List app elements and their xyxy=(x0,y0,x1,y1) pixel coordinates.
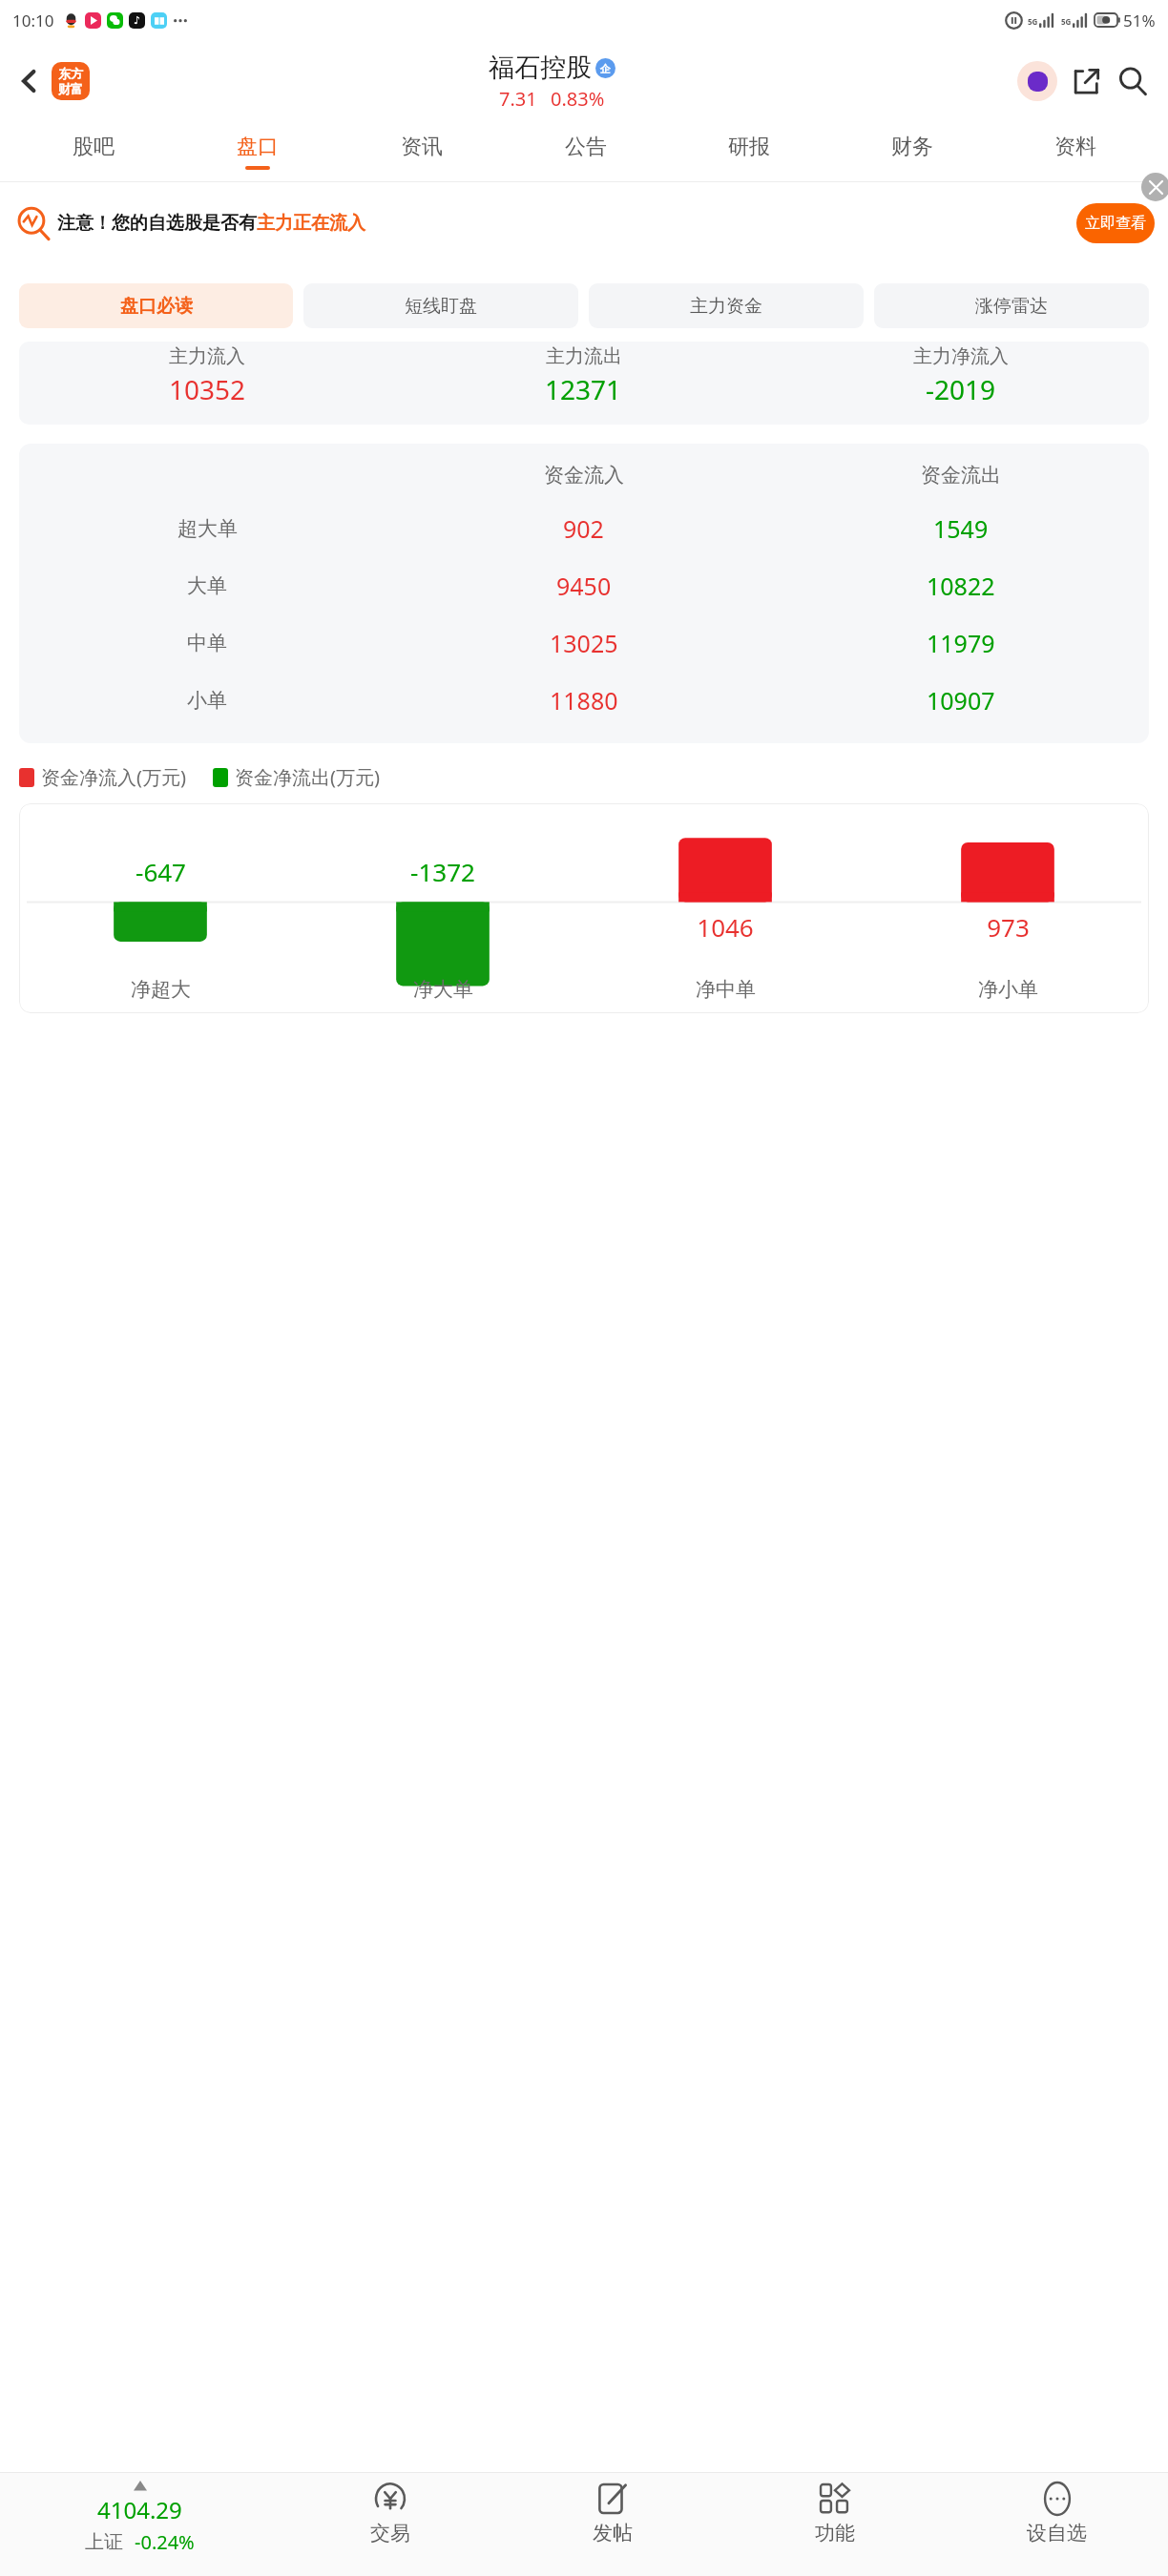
staticText: 7.31 xyxy=(499,86,537,112)
staticText: 注意！您的自选股是否有 xyxy=(57,212,257,235)
staticText: 10907 xyxy=(927,684,995,717)
staticText: 盘口必读 xyxy=(120,295,193,318)
button[interactable]: 研报 xyxy=(667,122,830,181)
staticText: 资料 xyxy=(1054,134,1096,160)
staticText: 净大单 xyxy=(413,977,473,1002)
staticText: 主力净流入 xyxy=(913,344,1009,365)
button[interactable]: 发帖 xyxy=(501,2473,723,2576)
staticText: 上证 xyxy=(85,2530,123,2554)
staticText: 盘口 xyxy=(237,134,279,160)
staticText: 净小单 xyxy=(978,977,1038,1002)
button[interactable]: 财务 xyxy=(830,122,993,181)
button[interactable]: 福石控股 xyxy=(489,52,615,112)
staticText: 股吧 xyxy=(73,134,115,160)
staticText: 短线盯盘 xyxy=(405,295,477,318)
button[interactable]: 短线盯盘 xyxy=(303,283,578,328)
staticText: 1046 xyxy=(697,910,754,944)
staticText: 资金净流入(万元) xyxy=(41,764,186,790)
staticText: 设自选 xyxy=(1027,2521,1087,2545)
staticText: 10352 xyxy=(169,371,246,407)
staticText: 企 xyxy=(600,62,611,75)
button[interactable]: 主力资金 xyxy=(589,283,864,328)
staticText: 财富 xyxy=(58,81,83,96)
staticText: -647 xyxy=(136,855,186,888)
staticText: ♪ xyxy=(134,14,141,27)
staticText: 资金净流出(万元) xyxy=(235,764,380,790)
button[interactable]: 盘口 xyxy=(176,122,340,181)
button[interactable]: 资料 xyxy=(993,122,1157,181)
staticText: 交易 xyxy=(370,2521,410,2545)
button[interactable]: Close xyxy=(1141,173,1168,201)
button[interactable]: 股吧 xyxy=(11,122,176,181)
button[interactable]: 公告 xyxy=(504,122,667,181)
staticText: 11880 xyxy=(550,684,618,717)
button[interactable]: 立即查看 xyxy=(1076,203,1155,243)
button[interactable]: Back xyxy=(8,59,52,103)
staticText: 11979 xyxy=(927,627,995,659)
staticText: 资金流入 xyxy=(544,463,624,488)
staticText: 5G xyxy=(1061,16,1072,27)
staticText: 4104.29 xyxy=(97,2494,182,2525)
staticText: 主力流出 xyxy=(546,344,622,365)
staticText: 资金流出 xyxy=(921,463,1001,488)
staticText: 10:10 xyxy=(12,10,54,31)
staticText: 发帖 xyxy=(593,2521,633,2545)
staticText: -0.24% xyxy=(135,2529,195,2555)
button[interactable]: 盘口必读 xyxy=(19,283,293,328)
staticText: 福石控股 xyxy=(489,52,592,84)
staticText: 10822 xyxy=(927,570,995,602)
staticText: 功能 xyxy=(815,2521,855,2545)
button[interactable]: AI助手 xyxy=(1015,59,1059,103)
staticText: 13025 xyxy=(550,627,618,659)
staticText: 5G xyxy=(1028,16,1038,27)
staticText: 资讯 xyxy=(401,134,443,160)
button[interactable]: 设自选 xyxy=(946,2473,1168,2576)
staticText: 主力资金 xyxy=(690,295,762,318)
staticText: 净超大 xyxy=(131,977,191,1002)
button[interactable]: 东方财富 xyxy=(52,62,90,100)
staticText: 净中单 xyxy=(696,977,756,1002)
button[interactable]: Search xyxy=(1111,59,1155,103)
staticText: 立即查看 xyxy=(1085,214,1146,233)
staticText: 9450 xyxy=(556,570,612,602)
staticText: 超大单 xyxy=(177,516,238,541)
staticText: -1372 xyxy=(410,855,475,888)
staticText: 主力正在流入 xyxy=(257,212,365,235)
staticText: 中单 xyxy=(187,631,227,655)
button[interactable]: 资讯 xyxy=(340,122,504,181)
staticText: 51% xyxy=(1123,10,1156,31)
staticText: 973 xyxy=(987,910,1030,944)
staticText: 主力流入 xyxy=(169,344,245,365)
staticText: 1549 xyxy=(933,512,989,545)
button[interactable]: 功能 xyxy=(723,2473,946,2576)
staticText: 12371 xyxy=(545,371,622,407)
staticText: -2019 xyxy=(926,371,996,407)
staticText: 大单 xyxy=(187,573,227,598)
button[interactable]: 4104.29 xyxy=(0,2473,279,2576)
staticText: 902 xyxy=(563,512,604,545)
staticText: 财务 xyxy=(891,134,933,160)
staticText: 东方 xyxy=(58,66,83,81)
staticText: 0.83% xyxy=(551,86,605,112)
staticText: 研报 xyxy=(728,134,770,160)
staticText: 涨停雷达 xyxy=(975,295,1048,318)
button[interactable]: 涨停雷达 xyxy=(874,283,1149,328)
staticText: 公告 xyxy=(565,134,607,160)
button[interactable]: 交易 xyxy=(279,2473,501,2576)
staticText: 小单 xyxy=(187,688,227,713)
button[interactable]: Share xyxy=(1065,60,1107,102)
